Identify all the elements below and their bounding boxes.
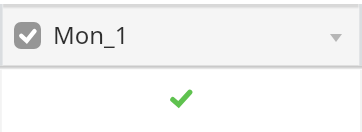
- other: Checked: [14, 22, 41, 49]
- staticText: Mon_1: [53, 18, 129, 51]
- button[interactable]: Checked: [0, 4, 362, 66]
- button[interactable]: Expand: [318, 17, 354, 53]
